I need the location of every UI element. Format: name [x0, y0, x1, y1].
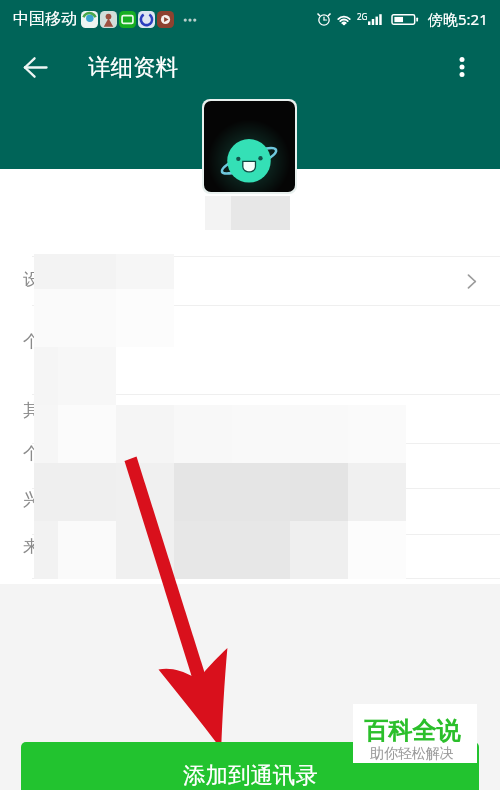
button[interactable]: 添加到通讯录: [21, 742, 479, 790]
staticText: 添加到通讯录: [183, 761, 318, 789]
staticText: 百科全说: [364, 716, 460, 746]
staticText: 来: [23, 536, 40, 557]
staticText: 其: [23, 400, 40, 421]
staticText: 个: [23, 331, 40, 352]
staticText: 个: [23, 443, 40, 464]
button[interactable]: 设: [23, 269, 47, 293]
staticText: 详细资料: [88, 53, 178, 81]
button[interactable]: 个: [23, 331, 47, 355]
button[interactable]: Profile photo: [204, 101, 295, 192]
staticText: 兴: [23, 489, 40, 510]
button[interactable]: Back: [6, 38, 64, 96]
staticText: 2G: [357, 11, 368, 22]
staticText: 助你轻松解决: [370, 745, 454, 763]
staticText: 傍晚5:21: [428, 9, 488, 29]
button[interactable]: 其: [23, 400, 47, 424]
button[interactable]: 来: [23, 536, 47, 560]
button[interactable]: More options: [433, 38, 491, 96]
staticText: 设: [23, 269, 40, 290]
staticText: 中国移动: [13, 9, 77, 29]
button[interactable]: 兴: [23, 489, 47, 513]
button[interactable]: 个: [23, 443, 47, 467]
button[interactable]: Open: [453, 263, 489, 299]
